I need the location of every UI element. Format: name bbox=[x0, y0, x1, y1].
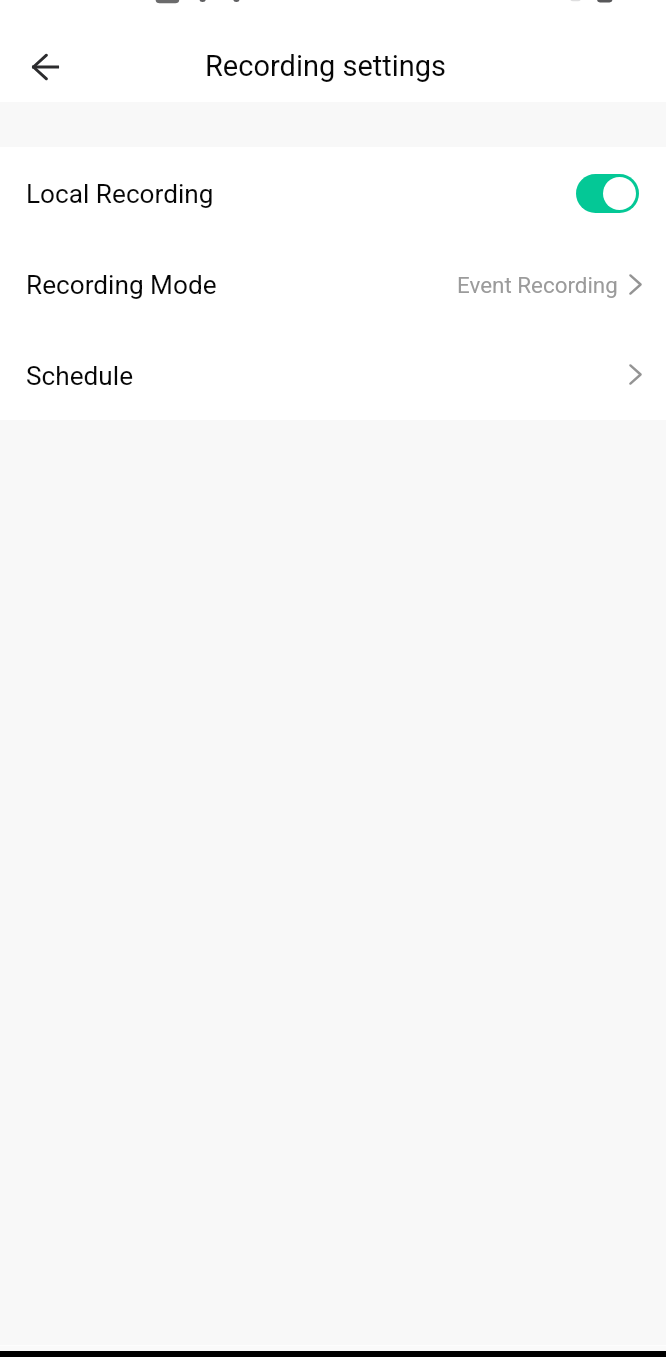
staticText: Local Recording bbox=[26, 179, 214, 210]
staticText: Recording settings bbox=[205, 49, 447, 83]
button[interactable]: Recording Mode bbox=[0, 238, 666, 329]
button[interactable]: Local Recording bbox=[0, 147, 666, 238]
staticText: Recording Mode bbox=[26, 270, 217, 301]
staticText: Event Recording bbox=[457, 272, 618, 298]
staticText: Schedule bbox=[26, 361, 134, 392]
button[interactable]: Back bbox=[16, 37, 74, 95]
button[interactable]: Local Recording toggle bbox=[576, 174, 639, 213]
button[interactable]: Schedule bbox=[0, 329, 666, 420]
